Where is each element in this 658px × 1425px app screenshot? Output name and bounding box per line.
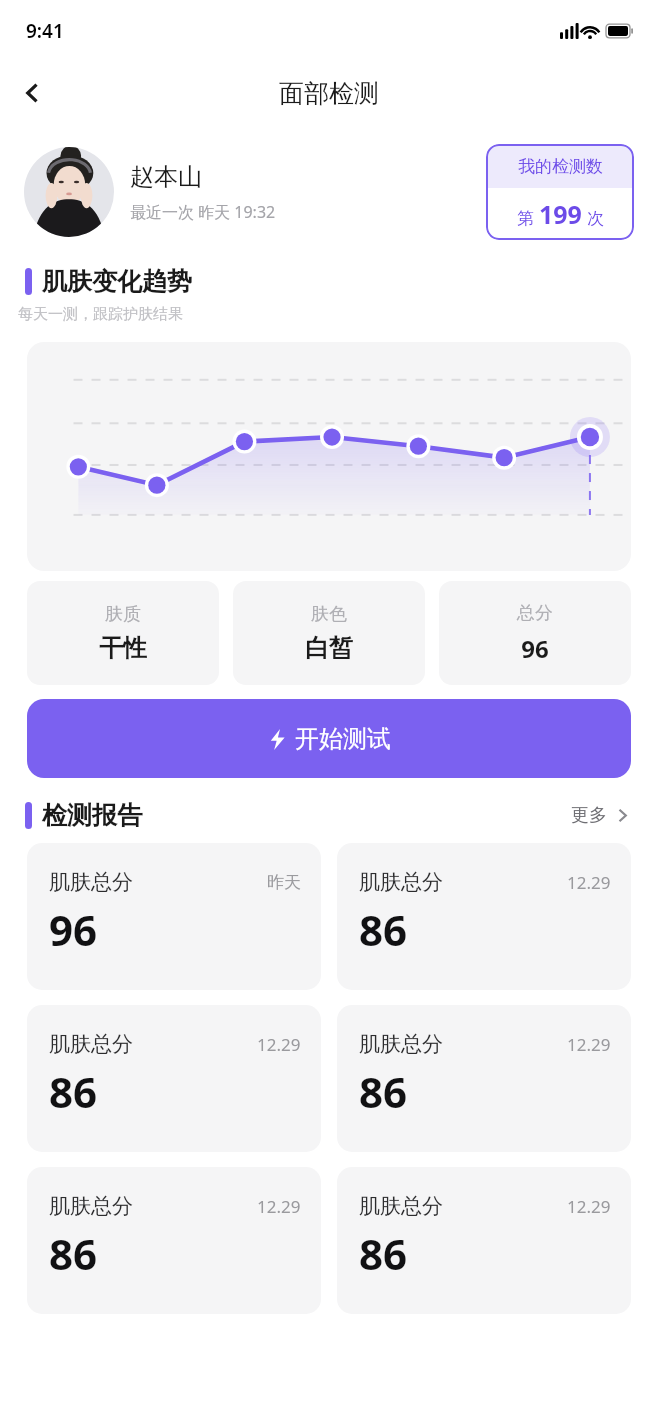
staticText: 肌肤总分: [359, 1193, 443, 1219]
staticText: 更多: [571, 804, 607, 827]
staticText: 干性: [99, 633, 147, 663]
staticText: 肌肤总分: [49, 869, 133, 895]
staticText: 86: [49, 1225, 98, 1282]
staticText: 面部检测: [279, 78, 379, 109]
staticText: 每天一测，跟踪护肤结果: [18, 305, 183, 324]
staticText: 我的检测数: [518, 156, 603, 177]
button[interactable]: 肌肤总分: [337, 1005, 631, 1152]
button[interactable]: 总分: [439, 581, 631, 685]
staticText: 12.29: [257, 1195, 301, 1218]
staticText: 86: [359, 901, 408, 958]
staticText: 肌肤总分: [49, 1193, 133, 1219]
staticText: 最近一次 昨天 19:32: [130, 201, 276, 223]
staticText: 12.29: [567, 1033, 611, 1056]
button[interactable]: 肤色: [233, 581, 425, 685]
button[interactable]: Back: [10, 70, 56, 116]
staticText: 昨天: [267, 872, 301, 893]
staticText: 86: [359, 1063, 408, 1120]
button[interactable]: Profile photo: [24, 147, 114, 237]
button[interactable]: 肤质: [27, 581, 219, 685]
staticText: 86: [49, 1063, 98, 1120]
button[interactable]: 肌肤总分: [27, 1005, 321, 1152]
staticText: 肌肤总分: [359, 869, 443, 895]
staticText: 12.29: [567, 1195, 611, 1218]
staticText: 96: [521, 632, 549, 665]
staticText: 肌肤总分: [49, 1031, 133, 1057]
button[interactable]: [27, 342, 631, 571]
staticText: 12.29: [257, 1033, 301, 1056]
staticText: 12.29: [567, 871, 611, 894]
staticText: 第: [517, 208, 534, 229]
staticText: 96: [49, 901, 98, 958]
button[interactable]: 肌肤总分: [337, 843, 631, 990]
staticText: 总分: [517, 602, 553, 625]
button[interactable]: 肌肤总分: [27, 843, 321, 990]
staticText: 白皙: [305, 633, 353, 663]
staticText: 肤色: [311, 603, 347, 626]
button[interactable]: 我的检测数: [486, 144, 634, 240]
staticText: 肌肤总分: [359, 1031, 443, 1057]
staticText: 肌肤变化趋势: [42, 266, 192, 297]
staticText: 次: [587, 208, 604, 229]
staticText: 肤质: [105, 603, 141, 626]
staticText: 86: [359, 1225, 408, 1282]
staticText: 开始测试: [295, 724, 391, 754]
button[interactable]: 肌肤总分: [27, 1167, 321, 1314]
button[interactable]: 更多: [567, 800, 634, 831]
staticText: 赵本山: [130, 162, 202, 192]
staticText: 检测报告: [42, 800, 142, 831]
button[interactable]: 开始测试: [27, 699, 631, 778]
staticText: 9:41: [26, 18, 64, 44]
button[interactable]: 肌肤总分: [337, 1167, 631, 1314]
staticText: 199: [539, 197, 582, 231]
